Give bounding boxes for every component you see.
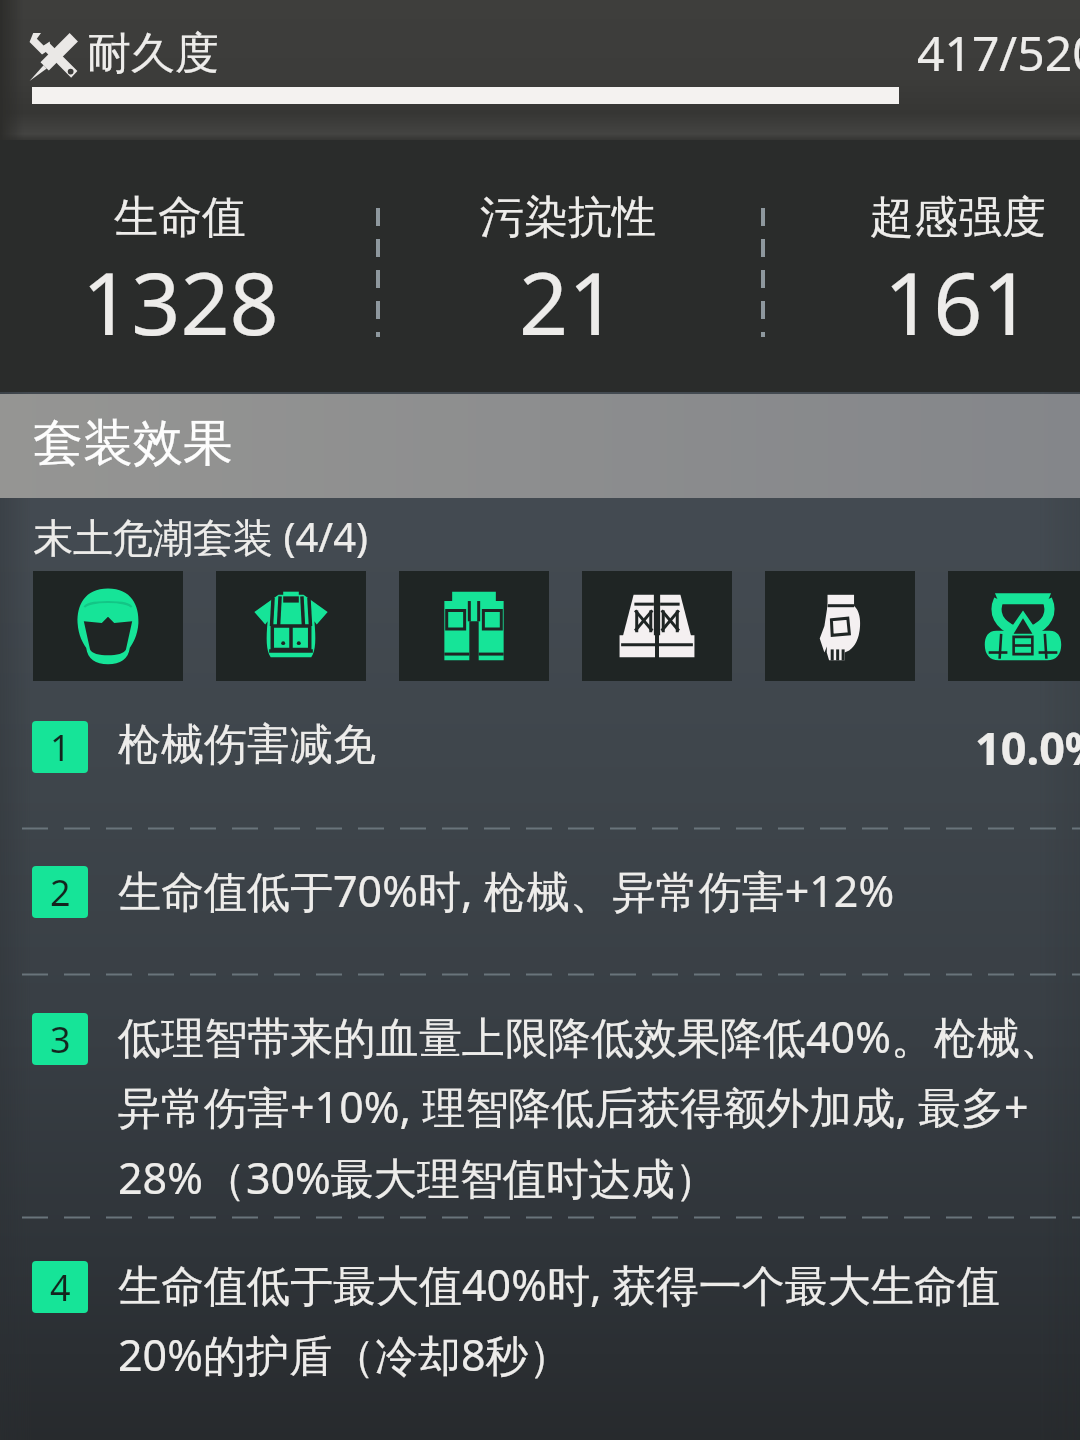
staticText: 161	[884, 243, 1032, 360]
staticText: 1328	[82, 243, 279, 360]
button[interactable]	[0, 845, 1080, 971]
staticText: 枪械伤害减免	[118, 718, 376, 772]
button[interactable]	[0, 700, 1080, 826]
staticText: 生命值	[114, 190, 246, 245]
button[interactable]: Helmet	[33, 571, 183, 681]
staticText: 超感强度	[870, 190, 1046, 245]
staticText: 3	[50, 1015, 71, 1064]
staticText: 生命值低于最大值40%时, 获得一个最大生命值 20%的护盾（冷却8秒）	[118, 1255, 1000, 1384]
staticText: 污染抗性	[480, 190, 656, 245]
button[interactable]	[0, 992, 1080, 1214]
other: Durability	[28, 30, 80, 82]
button[interactable]: 3	[32, 1013, 88, 1065]
staticText: 417/520	[917, 20, 1080, 85]
staticText: 耐久度	[87, 26, 219, 81]
staticText: 套装效果	[33, 412, 233, 475]
button[interactable]: Boots	[582, 571, 732, 681]
button[interactable]: 2	[32, 866, 88, 918]
button[interactable]: Gloves	[765, 571, 915, 681]
staticText: 1	[50, 723, 71, 772]
staticText: 末土危潮套装 (4/4)	[33, 509, 369, 564]
staticText: 10.0%	[975, 717, 1080, 778]
button[interactable]: Mask	[948, 571, 1080, 681]
staticText: 21	[519, 243, 618, 360]
button[interactable]: Vest	[216, 571, 366, 681]
staticText: 低理智带来的血量上限降低效果降低40%。枪械、 异常伤害+10%, 理智降低后获…	[118, 1007, 1063, 1207]
staticText: 4	[50, 1263, 71, 1312]
button[interactable]	[0, 1240, 1080, 1400]
button[interactable]: 1	[32, 721, 88, 773]
button[interactable]: 4	[32, 1261, 88, 1313]
button[interactable]: Pants	[399, 571, 549, 681]
staticText: 2	[50, 868, 71, 917]
staticText: 生命值低于70%时, 枪械、异常伤害+12%	[118, 861, 895, 920]
